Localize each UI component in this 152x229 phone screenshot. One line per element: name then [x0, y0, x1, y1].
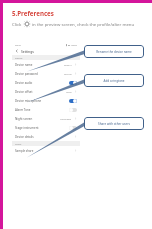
- staticText: Device microphone: [15, 99, 69, 103]
- staticText: Add a ringtone: [103, 79, 125, 83]
- button[interactable]: Sample share: [12, 146, 80, 155]
- button[interactable]: Alarm Tone: [12, 105, 80, 114]
- button[interactable]: Device password: [12, 69, 80, 78]
- staticText: in the preview screen, check the profile…: [32, 21, 135, 27]
- staticText: Pixel 7: [64, 63, 72, 66]
- staticText: Click: [12, 21, 22, 27]
- staticText: Auto: [66, 90, 72, 93]
- button[interactable]: Rename the device name: [84, 45, 144, 58]
- staticText: Device: [15, 56, 23, 59]
- staticText: 09:41: [15, 43, 22, 46]
- staticText: Device password: [15, 72, 64, 76]
- staticText: Device audio: [15, 81, 69, 85]
- button[interactable]: Toggle on: [69, 81, 77, 85]
- other: Back: [12, 47, 21, 55]
- button[interactable]: Stage instrument: [12, 123, 80, 132]
- button[interactable]: Toggle off: [69, 126, 77, 130]
- staticText: Share with other users: [98, 122, 130, 126]
- staticText: Night screen: [15, 117, 60, 121]
- button[interactable]: Device microphone: [12, 96, 80, 105]
- staticText: Sample share: [15, 149, 74, 153]
- button[interactable]: Back: [12, 47, 80, 55]
- staticText: Device name: [15, 63, 64, 67]
- staticText: Unlocked: [60, 117, 72, 120]
- staticText: Device details: [15, 135, 74, 139]
- button[interactable]: Settings: [24, 21, 30, 27]
- staticText: Rename the device name: [96, 50, 132, 54]
- button[interactable]: Add a ringtone: [84, 74, 144, 87]
- staticText: Settings: [21, 49, 34, 53]
- staticText: Alarm Tone: [15, 108, 69, 112]
- staticText: 5.Preferences: [12, 9, 54, 17]
- button[interactable]: Share with other users: [84, 117, 144, 130]
- button[interactable]: Night screen: [12, 114, 80, 123]
- button[interactable]: Toggle on: [69, 99, 77, 103]
- staticText: ▮ ▰ 100%: [66, 43, 77, 46]
- button[interactable]: Device audio: [12, 78, 80, 87]
- staticText: Set up: [64, 72, 72, 75]
- staticText: Other: [15, 142, 22, 145]
- button[interactable]: Device details: [12, 132, 80, 141]
- button[interactable]: Device offset: [12, 87, 80, 96]
- staticText: Stage instrument: [15, 126, 69, 130]
- button[interactable]: Toggle off: [69, 108, 77, 112]
- staticText: Device offset: [15, 90, 66, 94]
- button[interactable]: Device name: [12, 60, 80, 69]
